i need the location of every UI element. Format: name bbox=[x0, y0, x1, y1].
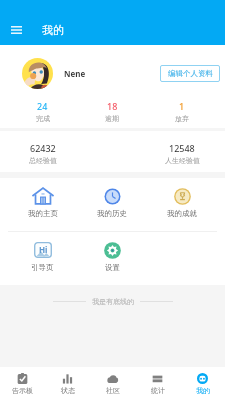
button[interactable]: 18 bbox=[77, 100, 147, 123]
staticText: 我的历史 bbox=[97, 209, 127, 218]
button[interactable]: Menu bbox=[0, 14, 33, 45]
button[interactable]: 1 bbox=[147, 100, 217, 123]
button[interactable]: 62432 bbox=[8, 142, 77, 165]
staticText: 1 bbox=[179, 100, 185, 112]
button[interactable]: 编辑个人资料 bbox=[160, 65, 220, 82]
button[interactable]: 12548 bbox=[147, 142, 217, 165]
staticText: 总经验值 bbox=[29, 156, 57, 165]
button[interactable]: 我的 bbox=[180, 367, 225, 400]
staticText: 状态 bbox=[61, 386, 75, 395]
staticText: 18 bbox=[107, 100, 118, 112]
staticText: 我的主页 bbox=[28, 209, 58, 218]
staticText: 社区 bbox=[106, 386, 120, 395]
staticText: 人生经验值 bbox=[165, 156, 200, 165]
button[interactable]: 24 bbox=[8, 100, 77, 123]
staticText: 设置 bbox=[105, 263, 120, 272]
button[interactable]: 我的主页 bbox=[8, 178, 77, 218]
staticText: 我的成就 bbox=[167, 209, 197, 218]
staticText: 引导页 bbox=[31, 263, 54, 272]
staticText: 告示板 bbox=[12, 386, 33, 395]
staticText: 24 bbox=[37, 100, 48, 112]
button[interactable]: 社区 bbox=[90, 367, 135, 400]
button[interactable]: 状态 bbox=[45, 367, 90, 400]
staticText: 逾期 bbox=[105, 114, 119, 123]
staticText: 我是有底线的 bbox=[92, 297, 134, 306]
staticText: Nene bbox=[64, 68, 86, 79]
staticText: 12548 bbox=[169, 142, 195, 154]
button[interactable]: Hi bbox=[8, 232, 77, 272]
staticText: 我的 bbox=[196, 386, 210, 395]
staticText: 放弃 bbox=[175, 114, 189, 123]
button[interactable]: 我的历史 bbox=[77, 178, 147, 218]
staticText: 统计 bbox=[151, 386, 165, 395]
button[interactable]: 统计 bbox=[135, 367, 180, 400]
button[interactable]: 我的成就 bbox=[147, 178, 217, 218]
staticText: 编辑个人资料 bbox=[168, 69, 213, 78]
staticText: 完成 bbox=[36, 114, 50, 123]
button[interactable]: 告示板 bbox=[0, 367, 45, 400]
staticText: Hi bbox=[39, 244, 48, 255]
staticText: 我的 bbox=[42, 23, 64, 37]
button[interactable]: 设置 bbox=[77, 232, 147, 272]
staticText: 62432 bbox=[30, 142, 56, 154]
